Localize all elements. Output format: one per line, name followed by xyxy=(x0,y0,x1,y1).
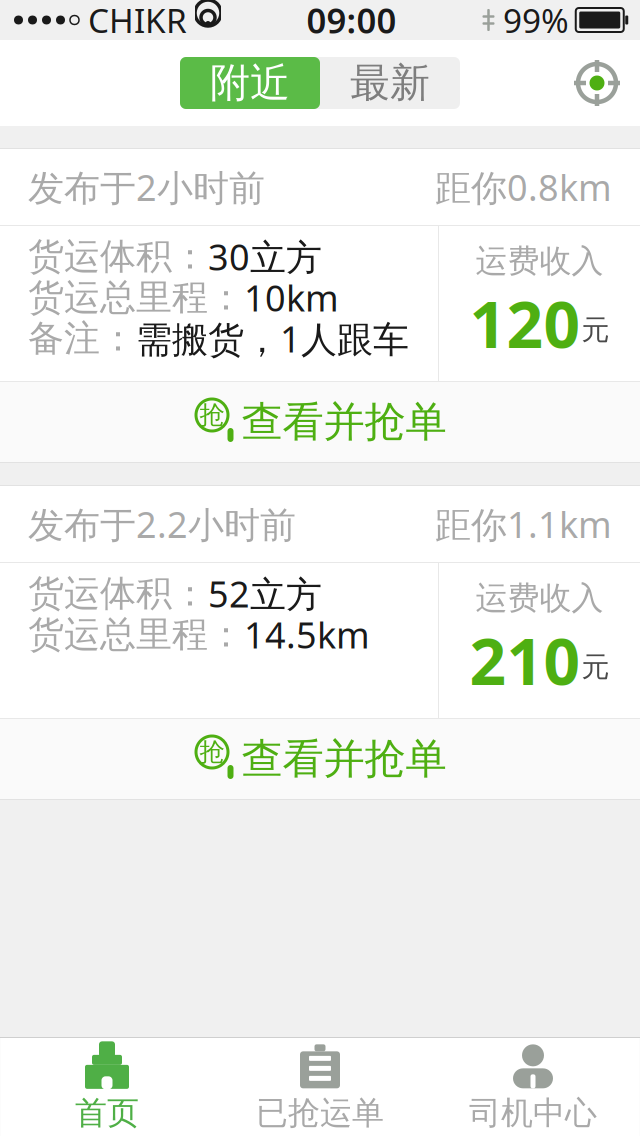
staticText: 最新 xyxy=(350,58,430,107)
staticText: 查看并抢单 xyxy=(241,734,446,784)
staticText: 货运总里程： xyxy=(28,275,244,320)
staticText: 需搬货，1人跟车 xyxy=(136,315,409,362)
staticText: 元 xyxy=(581,650,609,684)
staticText: 首页 xyxy=(75,1093,139,1133)
staticText: 运费收入 xyxy=(475,241,603,281)
staticText: 发布于2小时前 xyxy=(28,163,265,211)
staticText: 货运总里程： xyxy=(28,612,244,657)
staticText: 备注： xyxy=(28,316,136,361)
staticText: 货运体积： xyxy=(28,234,208,279)
staticText: 距你1.1km xyxy=(435,500,612,548)
staticText: 抢 xyxy=(199,736,224,767)
staticText: 30立方 xyxy=(208,233,322,280)
staticText: CHIKR xyxy=(88,0,187,42)
staticText: 210 xyxy=(469,618,580,703)
staticText: 10km xyxy=(244,274,339,321)
staticText: 99% xyxy=(503,0,569,42)
staticText: 运费收入 xyxy=(475,578,603,618)
staticText: 司机中心 xyxy=(469,1093,597,1133)
button[interactable]: 抢 xyxy=(0,719,640,799)
staticText: 查看并抢单 xyxy=(241,397,446,447)
button[interactable]: 抢 xyxy=(0,382,640,462)
button[interactable]: 附近 xyxy=(180,57,320,109)
staticText: 货运体积： xyxy=(28,571,208,616)
staticText: 抢 xyxy=(199,399,224,430)
staticText: 14.5km xyxy=(244,611,370,658)
staticText: 附近 xyxy=(210,58,290,107)
staticText: 120 xyxy=(469,281,580,366)
staticText: 09:00 xyxy=(306,0,396,43)
staticText: 52立方 xyxy=(208,570,322,617)
staticText: 距你0.8km xyxy=(435,163,612,211)
staticText: 元 xyxy=(581,313,609,347)
button[interactable]: 定位 xyxy=(574,60,620,106)
button[interactable]: 司机中心 xyxy=(426,1038,639,1136)
button[interactable]: 已抢运单 xyxy=(213,1038,426,1136)
button[interactable]: 首页 xyxy=(0,1038,213,1136)
staticText: 已抢运单 xyxy=(256,1093,384,1133)
button[interactable]: 最新 xyxy=(320,57,460,109)
staticText: 发布于2.2小时前 xyxy=(28,500,296,548)
